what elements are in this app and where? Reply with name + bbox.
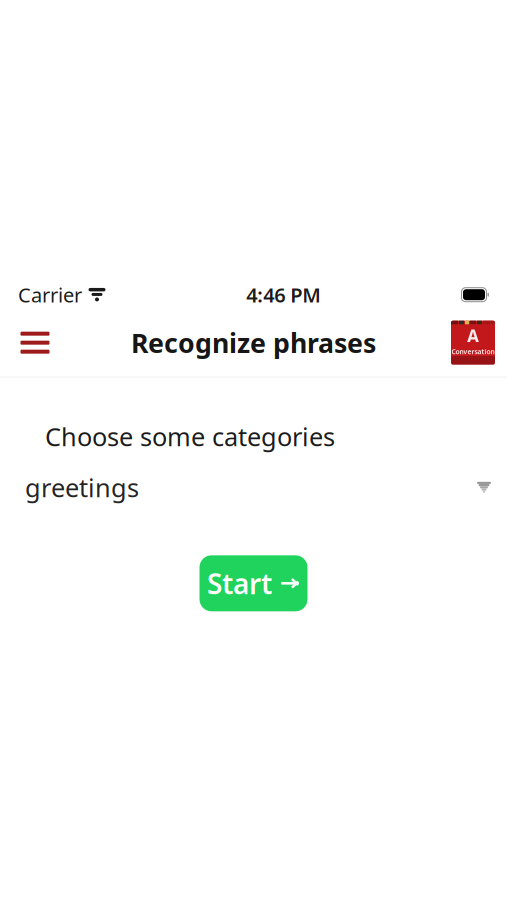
button[interactable]: Menu	[12, 321, 58, 365]
button[interactable]: Start	[199, 555, 307, 611]
button[interactable]: Book	[451, 321, 495, 365]
staticText: Carrier	[18, 281, 82, 308]
staticText: Recognize phrases	[131, 325, 376, 360]
staticText: Choose some categories	[45, 420, 335, 453]
staticText: Conversation	[451, 347, 494, 356]
staticText: A	[467, 324, 479, 347]
staticText: 4:46 PM	[246, 281, 321, 308]
button[interactable]: greetings	[0, 467, 507, 507]
staticText: greetings	[25, 470, 139, 504]
staticText: Start	[207, 565, 272, 602]
